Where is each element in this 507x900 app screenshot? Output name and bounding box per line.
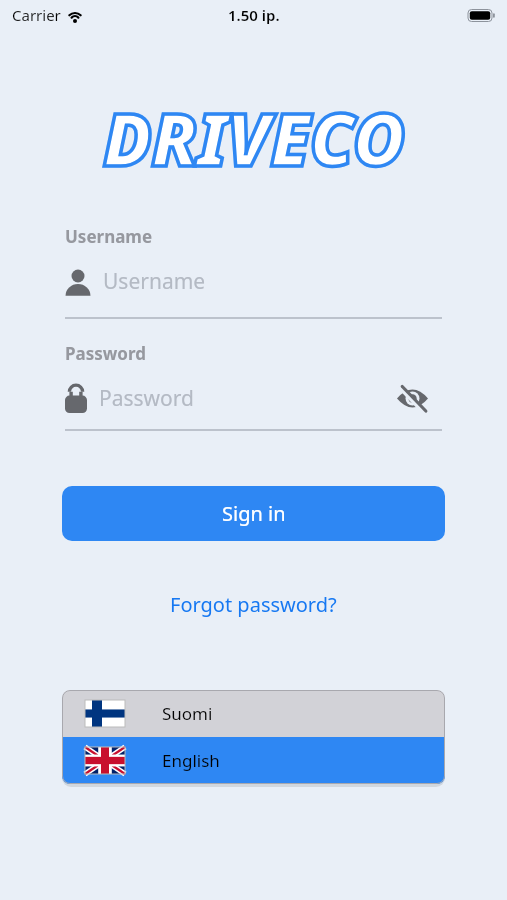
staticText: Password (65, 342, 146, 365)
button[interactable]: Password (65, 384, 442, 413)
staticText: Username (65, 225, 153, 248)
staticText: Carrier (12, 5, 61, 25)
button[interactable]: Sign in (62, 486, 445, 541)
staticText: DRIVECO (103, 89, 405, 187)
button[interactable]: Suomi (62, 690, 445, 737)
staticText: Suomi (162, 702, 213, 725)
button[interactable]: Forgot password? (164, 589, 343, 620)
staticText: Username (103, 267, 206, 296)
staticText: DRIVECO (103, 89, 405, 187)
button[interactable]: Username (65, 267, 442, 296)
staticText: 1.50 ip. (228, 5, 280, 25)
button[interactable]: English (62, 737, 445, 784)
staticText: English (162, 749, 220, 772)
staticText: Forgot password? (170, 591, 337, 618)
staticText: Password (99, 384, 194, 413)
staticText: Sign in (222, 500, 286, 527)
